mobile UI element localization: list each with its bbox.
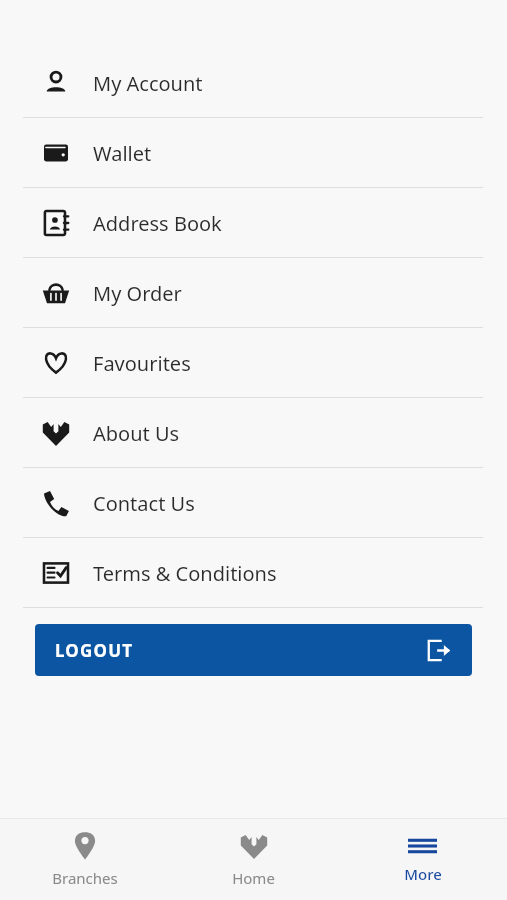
button[interactable]: Contact Us bbox=[0, 468, 507, 538]
other: Branches bbox=[73, 831, 97, 861]
staticText: Favourites bbox=[93, 350, 191, 377]
button[interactable]: Wallet bbox=[0, 118, 507, 188]
button[interactable]: Branches bbox=[0, 818, 169, 900]
button[interactable]: More bbox=[338, 818, 507, 900]
staticText: Branches bbox=[52, 868, 118, 888]
button[interactable]: Terms & Conditions bbox=[0, 538, 507, 608]
button[interactable]: About Us bbox=[0, 398, 507, 468]
staticText: My Order bbox=[93, 280, 182, 307]
staticText: LOGOUT bbox=[55, 639, 134, 662]
other: More bbox=[406, 835, 439, 857]
staticText: Home bbox=[232, 868, 275, 888]
button[interactable]: My Order bbox=[0, 258, 507, 328]
button[interactable]: Home bbox=[169, 818, 338, 900]
staticText: Terms & Conditions bbox=[93, 560, 277, 587]
button[interactable]: My Account bbox=[0, 48, 507, 118]
staticText: Contact Us bbox=[93, 490, 195, 517]
button[interactable]: Address Book bbox=[0, 188, 507, 258]
staticText: My Account bbox=[93, 70, 203, 97]
button[interactable]: LOGOUT bbox=[35, 624, 472, 676]
staticText: More bbox=[404, 864, 442, 884]
staticText: Address Book bbox=[93, 210, 222, 237]
staticText: Wallet bbox=[93, 140, 152, 167]
staticText: About Us bbox=[93, 420, 180, 447]
other: Home bbox=[239, 831, 269, 861]
button[interactable]: Favourites bbox=[0, 328, 507, 398]
